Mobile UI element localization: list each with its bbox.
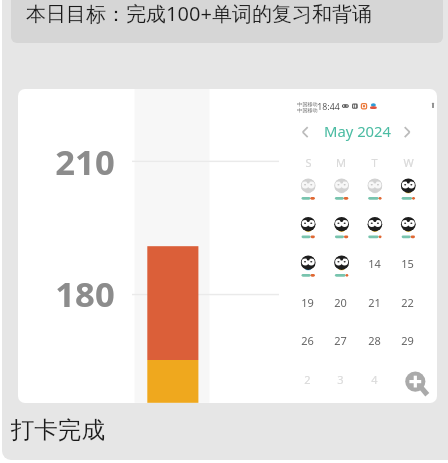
button[interactable]: May 12, practice done [291,249,324,281]
staticText: 15 [401,256,414,271]
staticText: 28 [368,333,381,348]
button[interactable]: May 8, practice done [391,172,424,204]
button[interactable]: 27 [324,325,357,355]
staticText: 14 [368,256,381,271]
staticText: 27 [334,333,347,348]
button[interactable]: May 6, practice done [324,172,357,204]
staticText: T [371,155,378,170]
staticText: 21 [368,295,381,310]
staticText: 180 [55,270,115,316]
button[interactable]: May 8, practice done [291,211,324,243]
staticText: 29 [401,333,414,348]
button[interactable]: Previous month [295,122,315,143]
button[interactable]: 26 [291,325,324,355]
button[interactable]: May 11, practice done [391,211,424,243]
button[interactable]: 3 [324,364,357,394]
staticText: 中国移动 [297,107,318,113]
button[interactable]: Next month [397,122,417,143]
staticText: 2 [304,372,311,387]
button[interactable]: 19 [291,287,324,317]
button[interactable]: 2 [291,364,324,394]
staticText: 22 [401,295,414,310]
button[interactable]: May 5, practice done [291,172,324,204]
staticText: 3 [337,372,344,387]
staticText: M [336,155,346,170]
button[interactable] [18,89,437,403]
staticText: 18:44 [317,101,340,113]
staticText: 19 [301,295,314,310]
staticText: 打卡完成 [11,415,105,445]
button[interactable]: May 7, practice done [358,172,391,204]
button[interactable]: 4 [358,364,391,394]
staticText: S [305,155,312,170]
staticText: May 2024 [324,121,391,141]
staticText: W [403,155,414,170]
button[interactable]: May 9, practice done [324,211,357,243]
button[interactable]: 20 [324,287,357,317]
button[interactable]: May 10, practice done [358,211,391,243]
button[interactable]: 14 [358,248,391,278]
button[interactable]: May 13, practice done [324,249,357,281]
staticText: 26 [301,333,314,348]
staticText: 4 [371,372,378,387]
button[interactable]: 22 [391,287,424,317]
staticText: 中国移动 [297,101,318,107]
staticText: 210 [55,138,115,184]
button[interactable]: Zoom in [403,370,427,394]
button[interactable]: 29 [391,325,424,355]
button[interactable]: 28 [358,325,391,355]
button[interactable]: 21 [358,287,391,317]
button[interactable]: 15 [391,248,424,278]
staticText: 20 [334,295,347,310]
button[interactable]: 本日目标：完成100+单词的复习和背诵 [11,0,443,43]
staticText: 本日目标：完成100+单词的复习和背诵 [26,0,372,27]
